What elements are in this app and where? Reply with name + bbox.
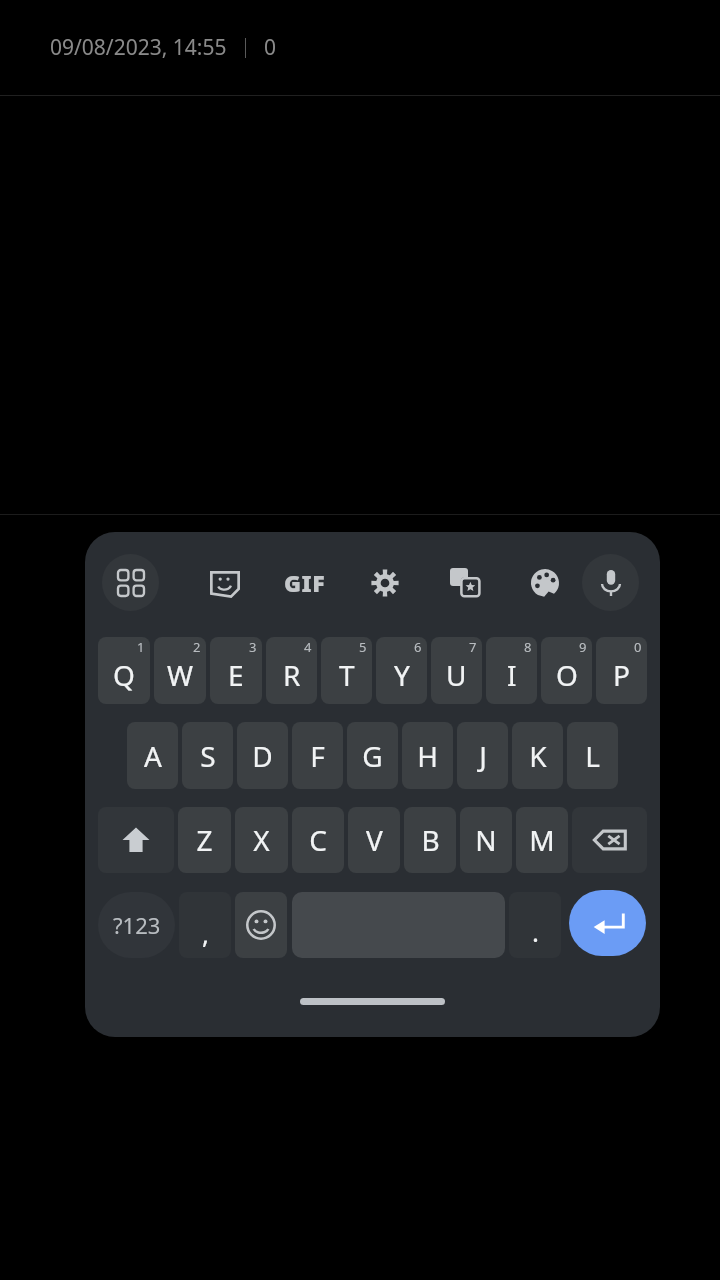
button[interactable]: S bbox=[182, 722, 233, 789]
button[interactable]: H bbox=[402, 722, 453, 789]
button[interactable]: Settings bbox=[356, 554, 413, 611]
button[interactable]: X bbox=[235, 807, 288, 873]
staticText: R bbox=[283, 656, 301, 694]
button[interactable]: Q bbox=[98, 637, 150, 704]
staticText: Y bbox=[394, 656, 410, 694]
button[interactable]: D bbox=[237, 722, 288, 789]
button[interactable]: A bbox=[127, 722, 178, 789]
staticText: H bbox=[417, 737, 438, 775]
button[interactable]: Translate bbox=[436, 554, 493, 611]
button[interactable]: . bbox=[509, 892, 561, 958]
staticText: E bbox=[228, 656, 244, 694]
button[interactable]: , bbox=[179, 892, 231, 958]
button[interactable]: G bbox=[347, 722, 398, 789]
button[interactable]: J bbox=[457, 722, 508, 789]
button[interactable]: L bbox=[567, 722, 618, 789]
button[interactable]: U bbox=[431, 637, 482, 704]
button[interactable]: P bbox=[596, 637, 647, 704]
staticText: P bbox=[613, 656, 630, 694]
button[interactable]: Toolbar apps bbox=[102, 554, 159, 611]
button[interactable]: Emoji bbox=[235, 892, 287, 958]
button[interactable]: Stickers bbox=[196, 554, 253, 611]
staticText: F bbox=[310, 737, 325, 775]
staticText: S bbox=[200, 737, 216, 775]
staticText: X bbox=[253, 821, 270, 859]
staticText: K bbox=[529, 737, 547, 775]
staticText: 8 bbox=[524, 638, 532, 656]
staticText: . bbox=[532, 914, 539, 949]
staticText: I bbox=[507, 656, 517, 694]
button[interactable]: V bbox=[348, 807, 400, 873]
button[interactable]: Shift bbox=[98, 807, 174, 873]
button[interactable]: Theme bbox=[516, 554, 573, 611]
staticText: 7 bbox=[469, 638, 477, 656]
button[interactable]: F bbox=[292, 722, 343, 789]
staticText: 1 bbox=[137, 638, 145, 656]
staticText: GIF bbox=[284, 567, 326, 598]
staticText: O bbox=[556, 656, 578, 694]
button[interactable]: R bbox=[266, 637, 317, 704]
button[interactable]: GIF bbox=[276, 554, 333, 611]
staticText: 0 bbox=[264, 33, 277, 62]
staticText: Z bbox=[196, 821, 213, 859]
staticText: N bbox=[475, 821, 497, 859]
staticText: 6 bbox=[414, 638, 422, 656]
button[interactable]: Voice input bbox=[582, 554, 639, 611]
button[interactable]: B bbox=[404, 807, 456, 873]
staticText: T bbox=[339, 656, 355, 694]
staticText: 0 bbox=[634, 638, 642, 656]
staticText: 5 bbox=[359, 638, 367, 656]
button[interactable]: T bbox=[321, 637, 372, 704]
staticText: 4 bbox=[304, 638, 312, 656]
staticText: Q bbox=[113, 656, 135, 694]
staticText: V bbox=[366, 821, 383, 859]
button[interactable]: ?123 bbox=[98, 892, 175, 958]
staticText: 2 bbox=[193, 638, 201, 656]
staticText: 3 bbox=[249, 638, 257, 656]
staticText: C bbox=[309, 821, 327, 859]
staticText: L bbox=[585, 737, 600, 775]
button[interactable]: W bbox=[154, 637, 206, 704]
staticText: J bbox=[479, 737, 487, 775]
button[interactable]: O bbox=[541, 637, 592, 704]
button[interactable]: Enter bbox=[569, 890, 646, 956]
staticText: M bbox=[529, 821, 555, 859]
button[interactable]: M bbox=[516, 807, 568, 873]
staticText: G bbox=[362, 737, 383, 775]
button[interactable]: Z bbox=[178, 807, 231, 873]
button[interactable]: I bbox=[486, 637, 537, 704]
staticText: U bbox=[446, 656, 467, 694]
staticText: 9 bbox=[579, 638, 587, 656]
button[interactable]: N bbox=[460, 807, 512, 873]
button[interactable]: E bbox=[210, 637, 262, 704]
button[interactable]: Y bbox=[376, 637, 427, 704]
button[interactable]: K bbox=[512, 722, 563, 789]
button[interactable]: Backspace bbox=[572, 807, 647, 873]
staticText: B bbox=[421, 821, 440, 859]
staticText: ?123 bbox=[113, 910, 161, 940]
staticText: W bbox=[167, 656, 194, 694]
staticText: D bbox=[252, 737, 273, 775]
staticText: , bbox=[202, 916, 209, 951]
button[interactable]: C bbox=[292, 807, 344, 873]
staticText: A bbox=[144, 737, 162, 775]
staticText: 09/08/2023, 14:55 bbox=[50, 33, 227, 62]
